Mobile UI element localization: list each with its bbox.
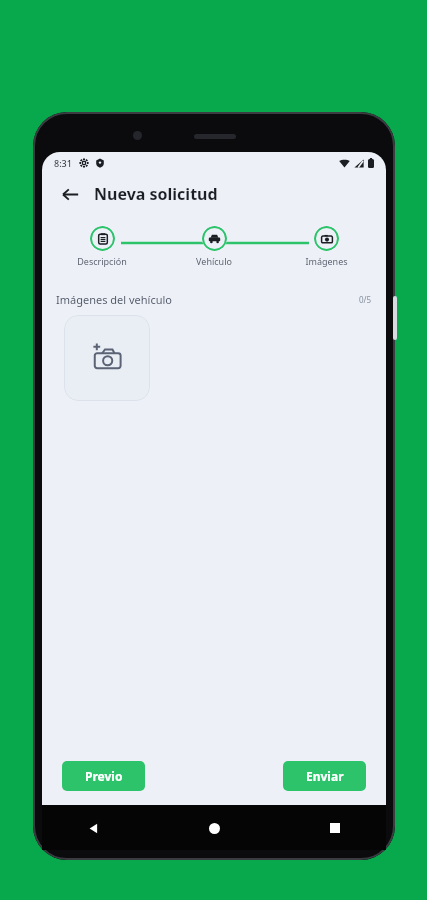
staticText: Enviar bbox=[306, 768, 344, 784]
staticText: 8:31 bbox=[54, 157, 72, 169]
staticText: Imágenes bbox=[305, 255, 348, 267]
button[interactable]: Descripción bbox=[64, 226, 140, 267]
button[interactable]: Recent apps bbox=[320, 813, 350, 843]
button[interactable]: Back bbox=[56, 180, 84, 208]
button[interactable]: Imágenes bbox=[288, 226, 364, 267]
button[interactable]: Añadir imagen bbox=[64, 315, 150, 401]
button[interactable]: Home bbox=[199, 813, 229, 843]
button[interactable]: Back bbox=[78, 813, 108, 843]
button[interactable]: Previo bbox=[62, 761, 145, 791]
staticText: Nueva solicitud bbox=[94, 183, 218, 205]
staticText: 0/5 bbox=[359, 294, 372, 305]
staticText: Vehículo bbox=[196, 255, 232, 267]
staticText: Previo bbox=[85, 768, 123, 784]
staticText: Descripción bbox=[77, 255, 127, 267]
staticText: Imágenes del vehículo bbox=[56, 292, 172, 307]
button[interactable]: Vehículo bbox=[176, 226, 252, 267]
button[interactable]: Enviar bbox=[283, 761, 366, 791]
